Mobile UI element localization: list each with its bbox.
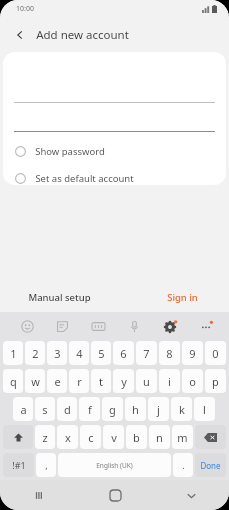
button[interactable]: u <box>136 369 157 393</box>
staticText: 0 <box>212 346 219 361</box>
staticText: z <box>42 430 48 445</box>
button[interactable]: Keyboard settings <box>160 316 180 336</box>
staticText: a <box>20 402 27 417</box>
button[interactable]: 6 <box>113 341 134 365</box>
button[interactable]: Done <box>195 453 226 477</box>
button[interactable]: v <box>103 425 124 449</box>
button[interactable]: Back <box>8 23 32 47</box>
button[interactable]: Show password <box>3 140 226 163</box>
button[interactable]: 5 <box>91 341 111 365</box>
staticText: c <box>88 430 94 445</box>
staticText: 1 <box>10 346 17 361</box>
button[interactable]: English (UK) <box>58 453 171 477</box>
button[interactable]: i <box>159 369 180 393</box>
button[interactable]: t <box>91 369 111 393</box>
staticText: Show password <box>35 145 105 158</box>
staticText: w <box>31 374 40 389</box>
staticText: h <box>132 402 139 417</box>
button[interactable]: e <box>47 369 67 393</box>
button[interactable]: r <box>69 369 89 393</box>
button[interactable]: a <box>13 397 33 421</box>
staticText: 10:00 <box>16 4 34 14</box>
staticText: d <box>64 402 71 417</box>
button[interactable]: More options <box>196 316 216 336</box>
staticText: 2 <box>32 346 39 361</box>
staticText: g <box>109 402 116 417</box>
staticText: Manual setup <box>28 291 91 304</box>
button[interactable]: . <box>173 453 193 477</box>
button[interactable]: 8 <box>159 341 180 365</box>
button[interactable]: x <box>57 425 78 449</box>
button[interactable]: p <box>205 369 226 393</box>
staticText: English (UK) <box>96 461 133 470</box>
staticText: 8 <box>166 346 173 361</box>
staticText: o <box>189 374 196 389</box>
button[interactable]: y <box>113 369 134 393</box>
staticText: t <box>99 374 103 389</box>
button[interactable]: Emoji <box>17 316 37 336</box>
button[interactable]: , <box>36 453 56 477</box>
staticText: n <box>156 430 163 445</box>
button[interactable]: c <box>80 425 101 449</box>
staticText: . <box>182 459 185 471</box>
staticText: k <box>179 402 185 417</box>
staticText: v <box>111 430 117 445</box>
button[interactable]: m <box>172 425 193 449</box>
button[interactable]: 1 <box>3 341 23 365</box>
staticText: q <box>10 374 17 389</box>
staticText: j <box>157 402 160 417</box>
staticText: i <box>168 374 171 389</box>
staticText: 5 <box>98 346 105 361</box>
button[interactable]: GIF <box>88 316 108 336</box>
button[interactable]: g <box>102 397 123 421</box>
button[interactable]: 4 <box>69 341 89 365</box>
button[interactable]: Hide keyboard <box>153 480 229 510</box>
button[interactable]: b <box>126 425 147 449</box>
staticText: m <box>177 430 188 445</box>
button[interactable]: 7 <box>136 341 157 365</box>
staticText: x <box>65 430 71 445</box>
button[interactable]: Shift <box>3 425 33 449</box>
button[interactable] <box>14 110 215 132</box>
button[interactable]: 9 <box>182 341 203 365</box>
button[interactable]: d <box>57 397 77 421</box>
button[interactable]: f <box>79 397 100 421</box>
staticText: 6 <box>120 346 127 361</box>
staticText: f <box>88 402 92 417</box>
button[interactable]: o <box>182 369 203 393</box>
button[interactable]: Set as default account <box>3 172 226 185</box>
button[interactable]: h <box>125 397 146 421</box>
button[interactable]: l <box>194 397 215 421</box>
staticText: 9 <box>189 346 196 361</box>
staticText: , <box>45 459 48 471</box>
staticText: e <box>54 374 61 389</box>
staticText: !#1 <box>12 459 26 471</box>
staticText: s <box>42 402 48 417</box>
staticText: Done <box>200 460 221 471</box>
staticText: Sign in <box>167 291 198 304</box>
staticText: u <box>143 374 150 389</box>
button[interactable]: 2 <box>25 341 45 365</box>
button[interactable]: Home <box>77 480 153 510</box>
button[interactable]: k <box>171 397 192 421</box>
button[interactable]: Manual setup <box>24 288 95 307</box>
button[interactable]: Backspace <box>195 425 226 449</box>
staticText: 3 <box>54 346 61 361</box>
button[interactable]: n <box>149 425 170 449</box>
button[interactable]: s <box>35 397 55 421</box>
button[interactable]: w <box>25 369 45 393</box>
button[interactable]: Stickers <box>52 316 72 336</box>
button[interactable]: 3 <box>47 341 67 365</box>
staticText: Add new account <box>36 27 129 43</box>
button[interactable]: !#1 <box>3 453 34 477</box>
button[interactable]: q <box>3 369 23 393</box>
staticText: Set as default account <box>35 172 134 185</box>
staticText: y <box>121 374 127 389</box>
button[interactable]: Voice input <box>124 316 144 336</box>
button[interactable]: Sign in <box>163 288 202 307</box>
button[interactable]: Recent apps <box>0 480 77 510</box>
button[interactable]: 0 <box>205 341 226 365</box>
button[interactable] <box>14 81 215 103</box>
button[interactable]: z <box>35 425 55 449</box>
button[interactable]: j <box>148 397 169 421</box>
